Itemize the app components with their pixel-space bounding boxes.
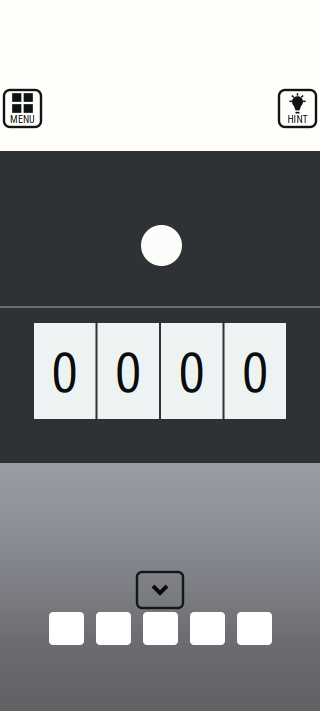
- staticText: 0: [242, 334, 268, 408]
- staticText: 0: [115, 334, 141, 408]
- button[interactable]: Inventory slot: [96, 612, 131, 645]
- button[interactable]: HINT: [279, 90, 316, 127]
- staticText: MENU: [10, 114, 35, 125]
- button[interactable]: Inventory slot: [49, 612, 84, 645]
- button[interactable]: Go down: [137, 572, 183, 608]
- button[interactable]: Inventory slot: [190, 612, 225, 645]
- button[interactable]: Inventory slot: [237, 612, 272, 645]
- button[interactable]: Inventory slot: [143, 612, 178, 645]
- button[interactable]: MENU: [4, 90, 41, 127]
- staticText: 0: [179, 334, 205, 408]
- staticText: 0: [52, 334, 78, 408]
- staticText: HINT: [287, 114, 307, 125]
